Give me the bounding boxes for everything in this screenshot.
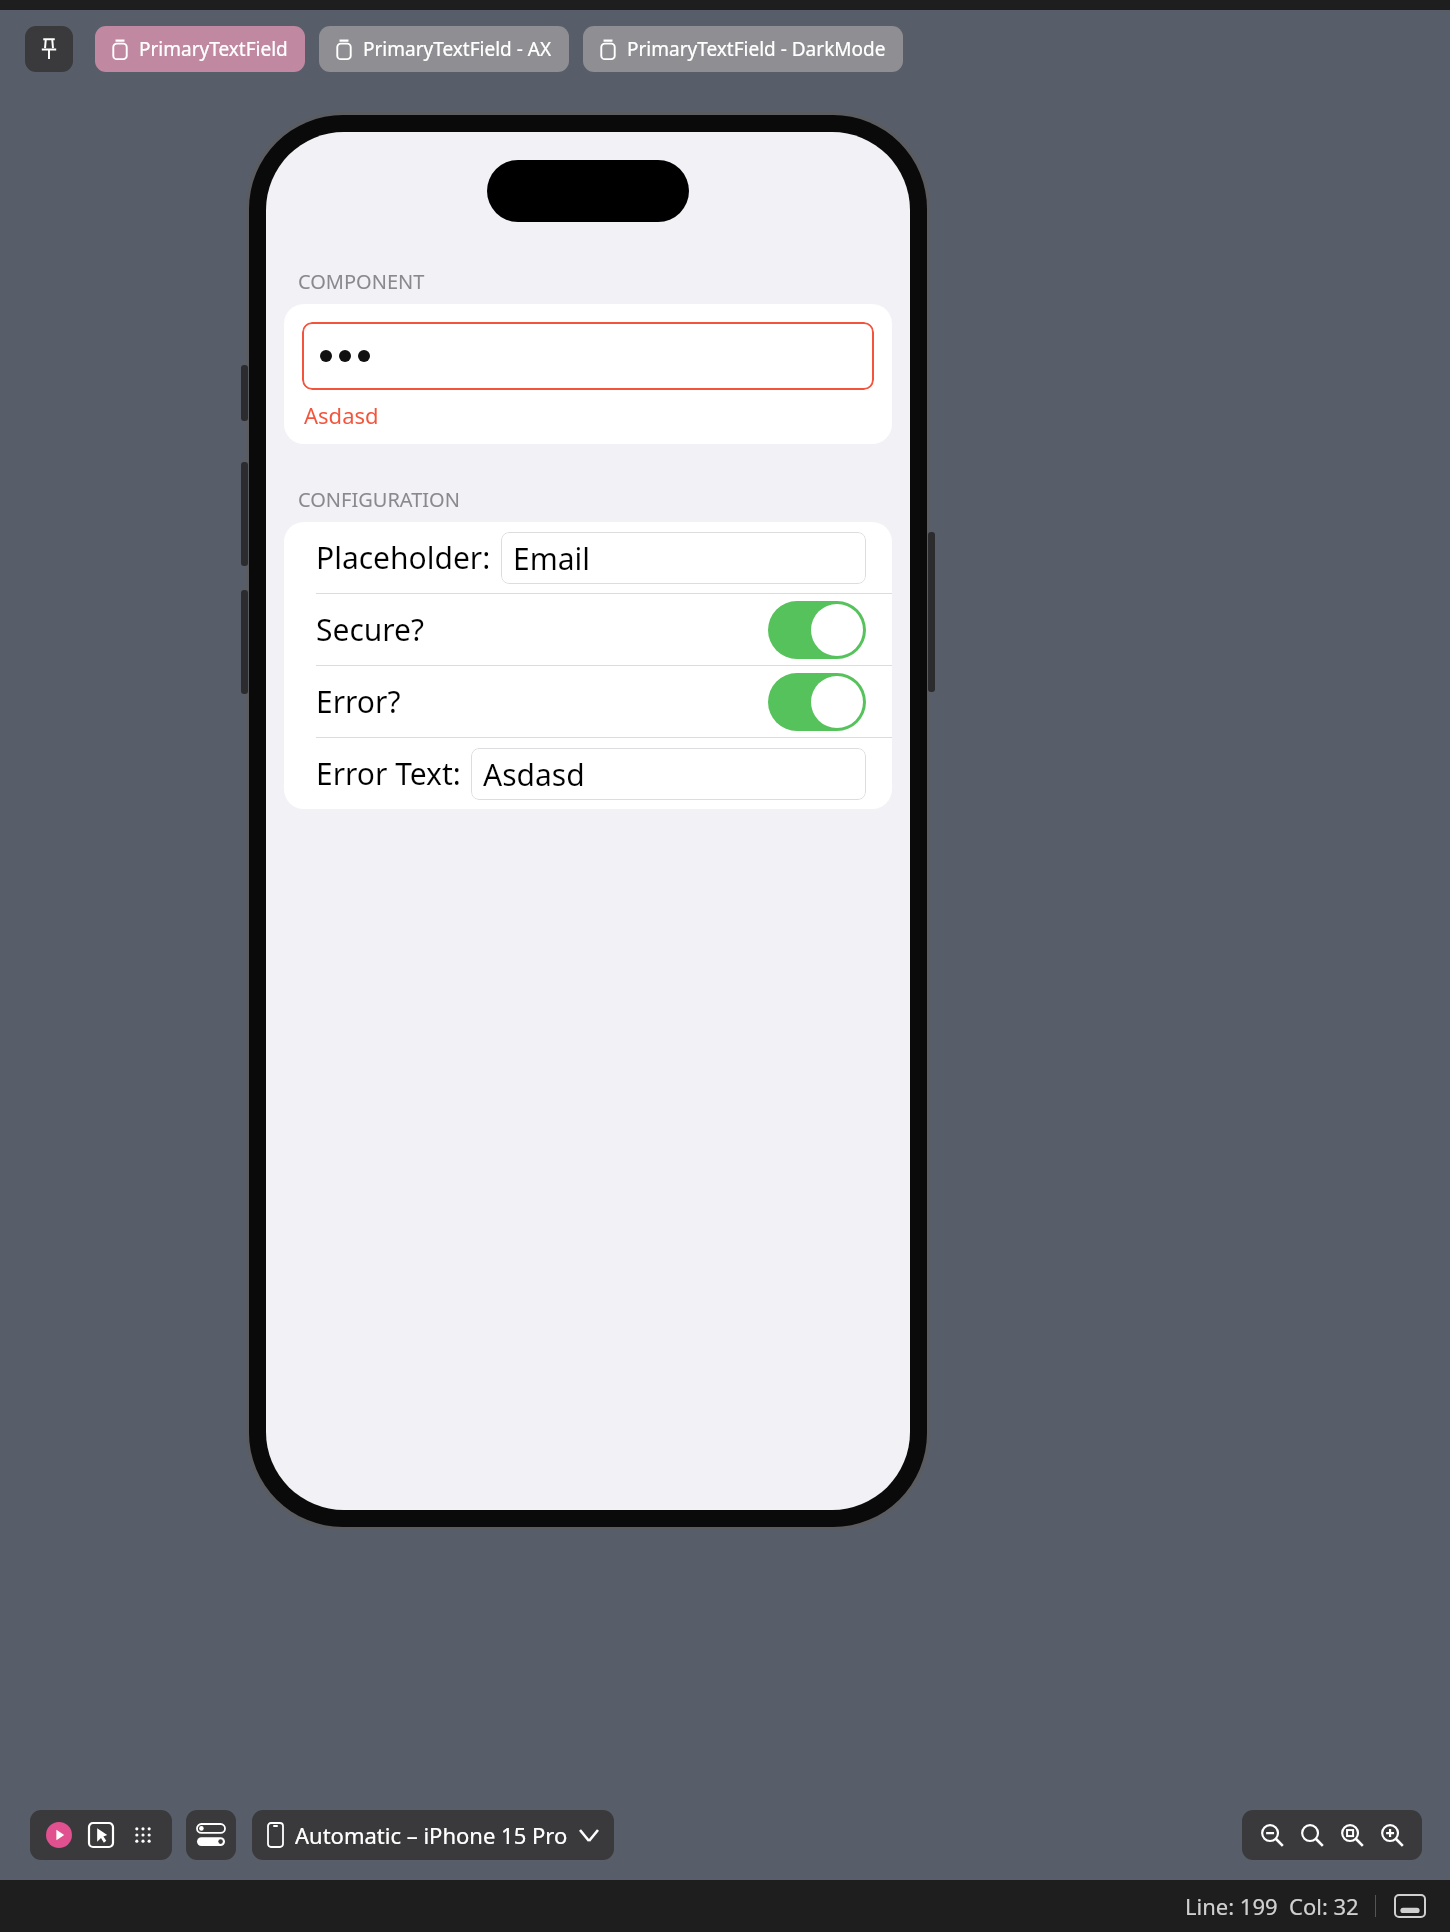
button[interactable]: Secure?: [284, 594, 892, 665]
staticText: PrimaryTextField - DarkMode: [627, 36, 886, 62]
button[interactable]: [302, 322, 874, 390]
staticText: Asdasd: [483, 754, 585, 795]
button[interactable]: PrimaryTextField - DarkMode: [583, 26, 903, 72]
button[interactable]: Toggle inspector: [1392, 1893, 1428, 1919]
button[interactable]: Zoom out: [1252, 1815, 1292, 1855]
button[interactable]: Placeholder:: [284, 522, 892, 593]
button[interactable]: Actual size: [1292, 1815, 1332, 1855]
button[interactable]: Asdasd: [471, 748, 866, 800]
button[interactable]: Toggle on: [768, 673, 866, 731]
staticText: Error?: [316, 681, 401, 722]
staticText: PrimaryTextField: [139, 36, 288, 62]
button[interactable]: Fit: [1332, 1815, 1372, 1855]
button[interactable]: Select: [84, 1818, 118, 1852]
button[interactable]: Play preview: [42, 1818, 76, 1852]
staticText: COMPONENT: [298, 268, 425, 295]
staticText: PrimaryTextField - AX: [363, 36, 552, 62]
button[interactable]: Automatic – iPhone 15 Pro: [252, 1810, 614, 1860]
staticText: Email: [513, 538, 591, 579]
button[interactable]: PrimaryTextField: [95, 26, 305, 72]
button[interactable]: PrimaryTextField - AX: [319, 26, 569, 72]
button[interactable]: Error?: [284, 666, 892, 737]
button[interactable]: Toggle on: [768, 601, 866, 659]
button[interactable]: Pin preview: [25, 26, 73, 72]
button[interactable]: Preview settings: [186, 1810, 236, 1860]
staticText: Automatic – iPhone 15 Pro: [295, 1820, 568, 1850]
button[interactable]: Zoom in: [1372, 1815, 1412, 1855]
staticText: Placeholder:: [316, 537, 491, 578]
staticText: Asdasd: [304, 400, 379, 430]
staticText: Secure?: [316, 609, 425, 650]
staticText: Line: 199 Col: 32: [1185, 1891, 1359, 1921]
button[interactable]: Email: [501, 532, 866, 584]
staticText: Error Text:: [316, 753, 461, 794]
button[interactable]: Error Text:: [284, 738, 892, 809]
staticText: CONFIGURATION: [298, 486, 460, 513]
button[interactable]: Variants: [126, 1818, 160, 1852]
